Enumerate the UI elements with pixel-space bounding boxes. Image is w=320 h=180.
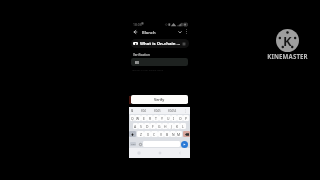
staticText: T	[155, 116, 157, 121]
staticText: Z	[140, 132, 142, 137]
staticText: KINEMASTER	[267, 52, 308, 60]
staticText: 80	[135, 60, 139, 65]
staticText: D	[146, 124, 149, 129]
button[interactable]: Verify	[131, 95, 188, 104]
staticText: 80454	[168, 109, 177, 113]
staticText: Identity is your unique name	[132, 69, 164, 72]
staticText: H	[164, 124, 167, 129]
button[interactable]: Emoji	[138, 142, 142, 146]
button[interactable]: 80	[131, 58, 188, 66]
staticText: What is On-chain ...	[140, 41, 180, 47]
button[interactable]: F	[150, 123, 156, 129]
staticText: M	[177, 132, 181, 137]
staticText: G	[131, 109, 134, 113]
button[interactable]: Send	[181, 141, 188, 148]
button[interactable]: What is On-chain ...	[131, 39, 189, 48]
staticText: 8045	[154, 109, 161, 113]
staticText: A	[134, 124, 137, 129]
staticText: O	[179, 116, 182, 121]
button[interactable]: O	[177, 115, 183, 121]
staticText: Verify	[154, 97, 165, 102]
staticText: F	[152, 124, 154, 129]
button[interactable]: ?123	[130, 142, 136, 146]
staticText: V	[160, 132, 163, 137]
button[interactable]: T	[153, 115, 159, 121]
button[interactable]: Shift	[129, 131, 136, 137]
staticText: R	[149, 116, 152, 121]
staticText: P	[185, 116, 188, 121]
button[interactable]: P	[183, 115, 189, 121]
staticText: J	[171, 124, 172, 129]
button[interactable]: J	[168, 123, 174, 129]
staticText: 804	[141, 109, 146, 113]
button[interactable]: Y	[159, 115, 165, 121]
button[interactable]: Q	[130, 115, 135, 121]
button[interactable]: C	[151, 131, 158, 137]
button[interactable]: N	[170, 131, 176, 137]
staticText: Q	[131, 116, 134, 121]
staticText: Blanch	[142, 30, 156, 36]
button[interactable]: Expand	[176, 28, 184, 36]
staticText: 18:06	[133, 22, 142, 27]
button[interactable]: D	[144, 123, 150, 129]
button[interactable]: A	[133, 123, 138, 129]
button[interactable]: M	[176, 131, 182, 137]
button[interactable]: H	[162, 123, 168, 129]
staticText: Y	[161, 116, 163, 121]
button[interactable]: B	[164, 131, 170, 137]
staticText: S	[140, 124, 142, 129]
button[interactable]: Z	[137, 131, 144, 137]
button[interactable]: R	[147, 115, 153, 121]
button[interactable]: More options	[183, 28, 190, 35]
staticText: ?123	[131, 143, 136, 146]
staticText: ⋮	[184, 109, 188, 113]
button[interactable]: Backspace	[183, 131, 190, 137]
staticText: E	[143, 116, 145, 121]
staticText: C	[153, 132, 156, 137]
button[interactable]: Back	[131, 28, 139, 36]
button[interactable]: E	[141, 115, 147, 121]
staticText: I	[173, 116, 175, 121]
staticText: K	[283, 32, 292, 50]
button[interactable]: G	[156, 123, 162, 129]
button[interactable]: X	[144, 131, 151, 137]
button[interactable]: W	[135, 115, 141, 121]
button[interactable]: I	[171, 115, 177, 121]
button[interactable]: Recents	[137, 151, 141, 155]
button[interactable]: Home	[158, 151, 162, 155]
staticText: L	[182, 124, 184, 129]
button[interactable]: V	[158, 131, 164, 137]
button[interactable]: S	[138, 123, 144, 129]
staticText: U	[167, 116, 170, 121]
button[interactable]: Navigate back	[178, 151, 182, 155]
staticText: B	[166, 132, 169, 137]
button[interactable]: U	[165, 115, 171, 121]
staticText: N	[172, 132, 175, 137]
button[interactable]: L	[180, 123, 186, 129]
staticText: X	[147, 132, 149, 137]
staticText: K	[176, 124, 179, 129]
staticText: G	[158, 124, 161, 129]
staticText: Verification	[133, 53, 150, 57]
staticText: W	[136, 116, 140, 121]
button[interactable]: K	[174, 123, 180, 129]
